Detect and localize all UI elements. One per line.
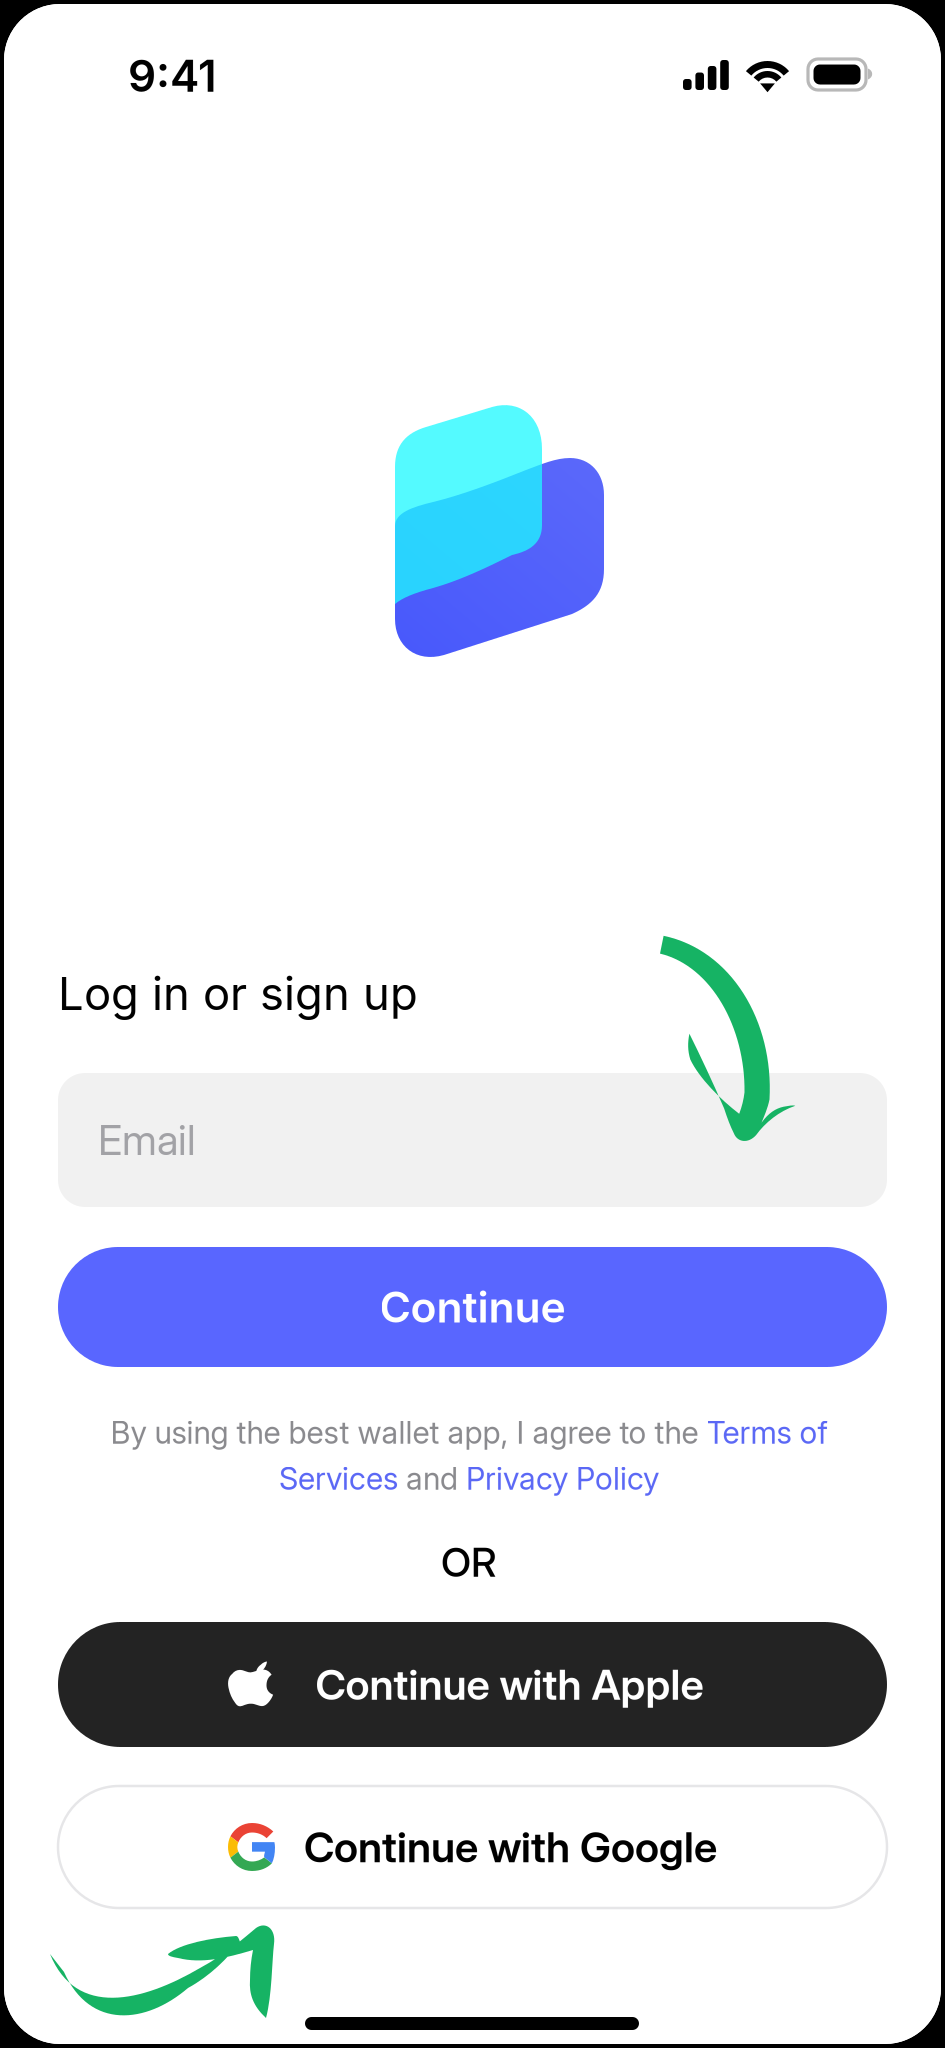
staticText: and (398, 1460, 466, 1497)
staticText: OR (441, 1538, 497, 1586)
staticText: Continue with Google (304, 1822, 717, 1872)
staticText: Log in or sign up (58, 966, 418, 1021)
staticText: Continue (379, 1281, 565, 1333)
staticText: Email (98, 1115, 196, 1165)
staticText: Terms of (706, 1414, 827, 1451)
button[interactable]: Continue (58, 1247, 887, 1367)
staticText: Continue with Apple (315, 1659, 703, 1710)
staticText: 9:41 (128, 49, 217, 102)
button[interactable]: Continue with Google (58, 1786, 887, 1908)
staticText: By using the best wallet app, I agree to… (110, 1414, 706, 1451)
button[interactable]: Continue with Apple (58, 1622, 887, 1747)
staticText: Services (279, 1460, 398, 1497)
staticText: Privacy Policy (466, 1460, 659, 1497)
